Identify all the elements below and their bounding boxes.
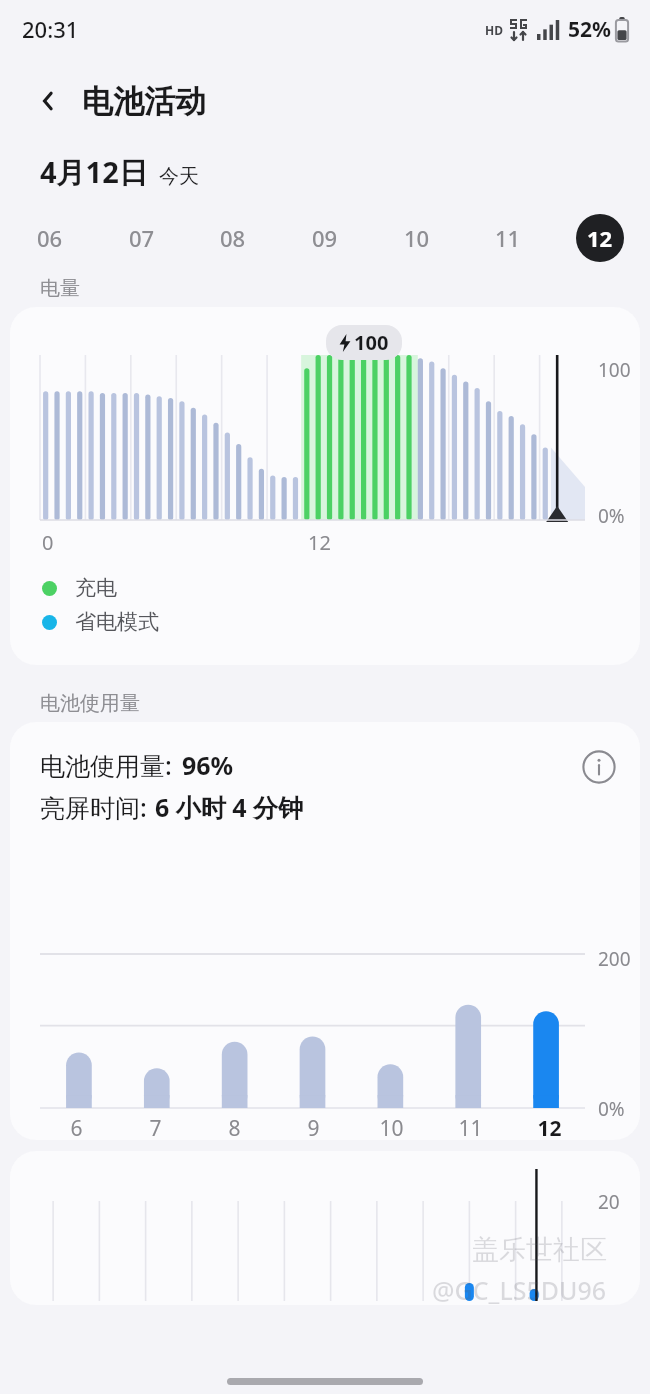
button[interactable]: 11 [484,214,532,262]
staticText: 96% [182,748,234,782]
button[interactable]: 20 [10,1151,640,1305]
staticText: 200 [598,946,631,972]
staticText: 12 [587,223,613,253]
staticText: 06 [37,223,63,253]
staticText: 电池使用量: [40,748,172,782]
staticText: 0% [598,1096,625,1122]
staticText: 12 [537,1114,562,1143]
staticText: 盖乐世社区 [472,1233,607,1267]
button[interactable]: 07 [118,214,166,262]
staticText: @GC_LS5DU96 [432,1273,607,1307]
staticText: 亮屏时间: [40,790,147,824]
staticText: 电量 [40,276,80,301]
staticText: 11 [495,223,521,253]
staticText: 8 [228,1114,241,1143]
staticText: 6 小时 4 分钟 [155,790,304,824]
staticText: 20 [598,1189,620,1215]
staticText: 电池使用量 [40,691,140,716]
staticText: 52% [568,15,611,44]
staticText: 6 [70,1114,83,1143]
staticText: 9 [307,1114,320,1143]
button[interactable]: 10 [393,214,441,262]
staticText: 0% [598,503,625,529]
button[interactable]: 信息 [576,744,622,790]
button[interactable]: 09 [301,214,349,262]
button[interactable]: 12 [576,214,624,262]
staticText: 今天 [159,164,199,189]
button[interactable]: 省电模式 [42,609,159,635]
button[interactable]: 100 [10,307,640,665]
staticText: 100 [354,329,389,356]
button[interactable]: 08 [209,214,257,262]
staticText: 12 [308,529,331,556]
staticText: 10 [404,223,430,253]
staticText: 07 [129,223,155,253]
staticText: 20:31 [22,14,79,44]
button[interactable]: 充电 [42,575,117,601]
button[interactable]: 返回 [26,79,70,123]
staticText: 100 [598,357,631,383]
staticText: 08 [220,223,246,253]
staticText: 09 [312,223,338,253]
staticText: 11 [458,1114,483,1143]
staticText: 4月12日 [40,152,148,192]
staticText: 7 [149,1114,162,1143]
staticText: 10 [379,1114,404,1143]
button[interactable]: 06 [26,214,74,262]
staticText: 省电模式 [75,609,159,635]
button[interactable]: 电池使用量: [10,722,640,1140]
staticText: 充电 [75,575,117,601]
staticText: 0 [42,529,54,556]
staticText: HD [485,22,503,38]
staticText: 电池活动 [82,82,206,121]
